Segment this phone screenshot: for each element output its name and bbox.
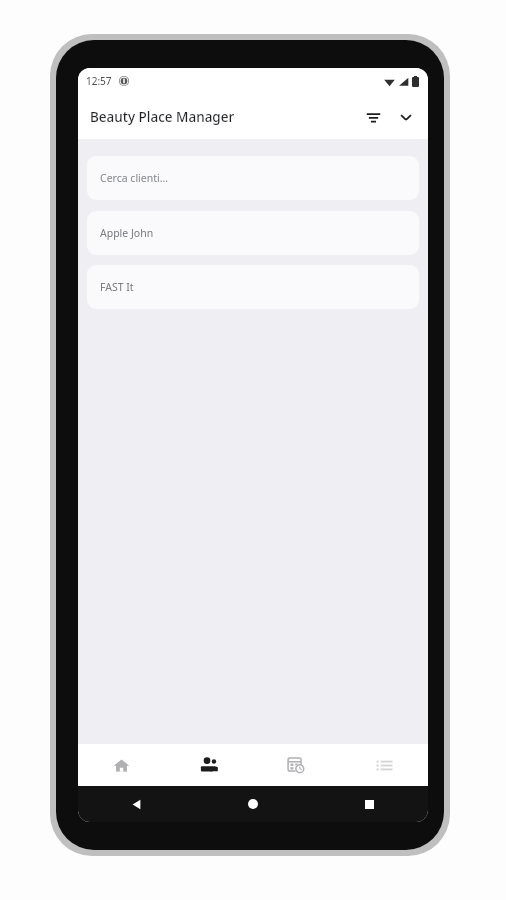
staticText: Cerca clienti...	[100, 171, 169, 185]
button[interactable]: Cerca clienti...	[87, 156, 419, 200]
button[interactable]: Apple John	[87, 211, 419, 255]
button[interactable]: List	[340, 744, 428, 786]
button[interactable]: Clients	[165, 744, 252, 786]
button[interactable]: Recent apps	[311, 786, 428, 822]
button[interactable]: Back	[78, 786, 194, 822]
button[interactable]: Filter	[358, 102, 388, 132]
staticText: FAST It	[100, 280, 134, 294]
staticText: Apple John	[100, 226, 154, 240]
button[interactable]: FAST It	[87, 265, 419, 309]
button[interactable]: Home	[194, 786, 311, 822]
button[interactable]: Home	[78, 744, 165, 786]
button[interactable]: Expand	[391, 102, 421, 132]
button[interactable]: Schedule	[252, 744, 340, 786]
staticText: Beauty Place Manager	[90, 108, 235, 126]
staticText: 12:57	[86, 74, 112, 88]
